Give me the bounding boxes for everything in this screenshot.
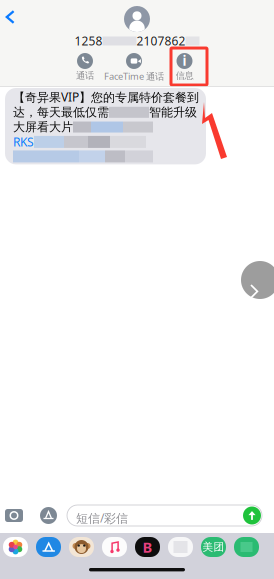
staticText: 大屏看大片 [13, 120, 73, 134]
button[interactable]: Music [102, 537, 127, 557]
staticText: 达，每天最低仅需 [13, 105, 109, 120]
button[interactable]: App Store [40, 507, 57, 524]
button[interactable]: More [241, 261, 274, 299]
staticText: 美团 [202, 540, 224, 553]
staticText: RKS [13, 134, 34, 150]
button[interactable]: App [234, 537, 259, 557]
button[interactable]: i [175, 53, 193, 81]
staticText: 智能升级 [149, 105, 197, 120]
staticText: 通话 [76, 70, 94, 81]
staticText: 信息 [175, 70, 193, 81]
button[interactable]: App [168, 537, 193, 557]
button[interactable]: Memoji [69, 537, 94, 557]
button[interactable]: Meituan [201, 537, 226, 557]
button[interactable]: 通话 [76, 53, 94, 81]
button[interactable]: App Store [36, 537, 61, 557]
button[interactable]: Back [0, 5, 20, 29]
staticText: B [142, 537, 152, 557]
staticText: 1258 [74, 33, 102, 49]
button[interactable]: Camera [5, 509, 23, 522]
button[interactable]: Photos [3, 537, 28, 557]
button[interactable]: Send [243, 506, 261, 524]
button[interactable]: Bilibili [135, 537, 160, 557]
staticText: 【奇异果VIP】您的专属特价套餐到 [13, 89, 199, 105]
staticText: i [182, 52, 186, 69]
staticText: 短信/彩信 [76, 510, 128, 526]
button[interactable]: FaceTime 通话 [104, 53, 164, 82]
staticText: FaceTime 通话 [104, 70, 164, 82]
staticText: 2107862 [136, 33, 185, 49]
